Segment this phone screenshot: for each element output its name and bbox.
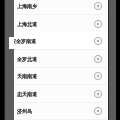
staticText: 济州岛 [17,108,32,114]
staticText: 天南南道 [17,73,37,79]
staticText: 天南南道 [17,73,37,79]
button[interactable]: 忠天南道 [0,85,120,103]
staticText: 上海南乡 [17,3,37,9]
button[interactable]: 全罗北道 [0,50,120,68]
staticText: 安全罗南道 [11,38,36,44]
staticText: 忠天南道 [17,91,37,97]
staticText: 上海北道 [17,21,37,27]
staticText: 全罗北道 [17,56,37,62]
staticText: 全罗北道 [17,56,37,62]
button[interactable]: 安全罗南道 [0,32,120,50]
button[interactable]: 济州岛 [0,102,120,120]
button[interactable]: 上海北道 [0,15,120,33]
staticText: 上海北道 [17,21,37,27]
staticText: 忠天南道 [17,91,37,97]
button[interactable]: 上海南乡 [0,0,120,15]
button[interactable]: 天南南道 [0,67,120,85]
staticText: 上海南乡 [17,3,37,9]
staticText: 安全罗南道 [11,38,36,44]
staticText: 济州岛 [17,108,32,114]
